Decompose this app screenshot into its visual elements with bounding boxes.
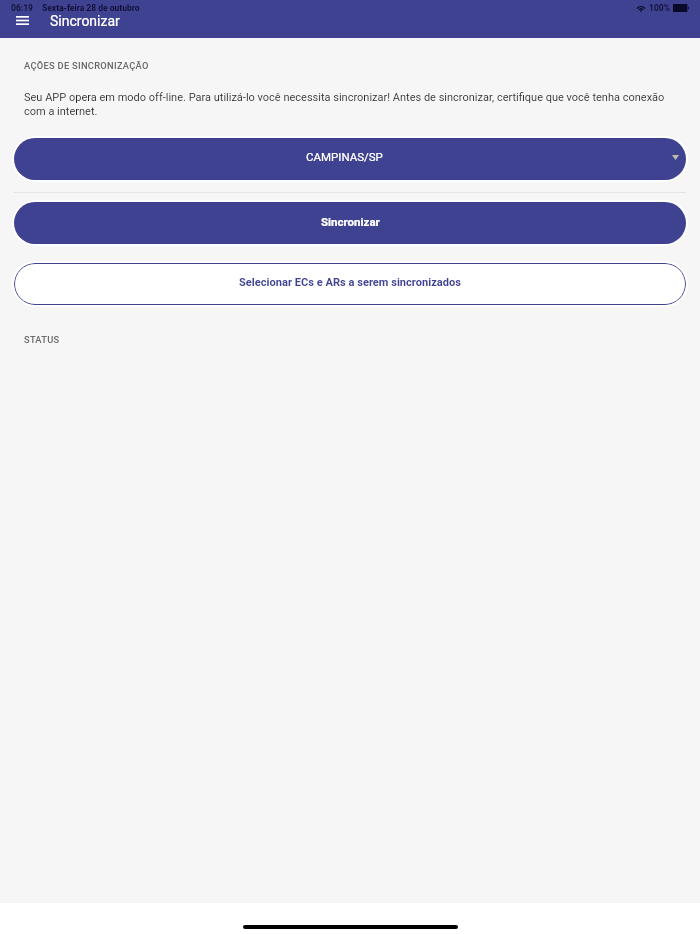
staticText: Sincronizar xyxy=(50,13,120,28)
staticText: Selecionar ECs e ARs a serem sincronizad… xyxy=(239,276,461,289)
staticText: STATUS xyxy=(24,334,60,345)
button[interactable]: Menu xyxy=(10,13,34,28)
button[interactable]: CAMPINAS/SP xyxy=(14,138,686,180)
button[interactable]: Selecionar ECs e ARs a serem sincronizad… xyxy=(14,263,686,305)
button[interactable]: Sincronizar xyxy=(14,202,686,244)
staticText: AÇÕES DE SINCRONIZAÇÃO xyxy=(24,60,149,71)
staticText: Sexta-feira 28 de outubro xyxy=(42,3,140,13)
staticText: Seu APP opera em modo off-line. Para uti… xyxy=(24,91,676,118)
staticText: CAMPINAS/SP xyxy=(306,150,383,163)
staticText: Sincronizar xyxy=(321,215,380,228)
staticText: 06:19 xyxy=(11,3,33,13)
staticText: 100% xyxy=(649,3,670,13)
